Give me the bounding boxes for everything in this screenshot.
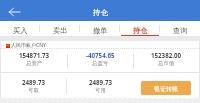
staticText: 买入 (13, 26, 28, 35)
staticText: 154871.73 (19, 51, 50, 59)
button[interactable]: 撤单 (80, 21, 120, 36)
staticText: 2489.73 (89, 78, 112, 86)
staticText: 银证转账 (154, 85, 178, 93)
staticText: 查询 (173, 26, 188, 35)
staticText: 卖出 (53, 26, 68, 35)
staticText: 152382.00 (151, 51, 182, 59)
staticText: -40754.65 (86, 51, 115, 59)
staticText: 总资产 (26, 60, 43, 67)
button[interactable]: 查询 (160, 21, 200, 36)
staticText: 可用 (95, 87, 106, 94)
staticText: 持仓 (133, 26, 148, 35)
staticText: 持仓 (93, 8, 108, 17)
staticText: 2489.73 (22, 78, 45, 86)
staticText: 人民币账户CNY (11, 42, 46, 49)
staticText: 可取 (28, 87, 39, 94)
staticText: 总市值 (158, 60, 175, 67)
button[interactable]: 买入 (0, 21, 40, 36)
button[interactable]: 银证转账 (141, 81, 191, 95)
button[interactable]: 持仓 (120, 21, 160, 36)
staticText: 总盈亏 (92, 60, 109, 67)
staticText: 撤单 (93, 26, 108, 35)
button[interactable]: Back (8, 7, 20, 17)
button[interactable]: 卖出 (40, 21, 80, 36)
